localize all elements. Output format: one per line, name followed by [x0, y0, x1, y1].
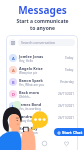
- staticText: Today: [65, 68, 74, 72]
- staticText: Okay thanks: [19, 119, 37, 123]
- staticText: See you soon: [19, 131, 38, 135]
- staticText: Search conversation: [21, 40, 56, 45]
- staticText: Hey, Hello: [19, 59, 34, 63]
- staticText: 26/11/2021: [58, 104, 74, 108]
- button[interactable]: B: [6, 76, 78, 88]
- button[interactable]: Favorites: [62, 139, 70, 147]
- staticText: Start a communicate to anyone: [16, 18, 69, 31]
- staticText: Jomlee Jonas: [19, 54, 44, 59]
- staticText: Kevin Ray: [19, 126, 38, 131]
- staticText: A: [12, 68, 15, 73]
- staticText: Yesterday: [60, 80, 74, 84]
- staticText: Yes, What are you: [19, 83, 44, 87]
- staticText: Wow,nice pic: [19, 71, 38, 75]
- button[interactable]: Search conversation: [18, 39, 75, 46]
- staticText: 26/11/2021: [58, 92, 74, 96]
- staticText: Messages: [18, 3, 67, 17]
- button[interactable]: D: [6, 88, 78, 100]
- button[interactable]: Menu: [9, 39, 16, 46]
- staticText: Sandra Mill: [19, 114, 41, 119]
- staticText: Today: [65, 56, 74, 60]
- button[interactable]: S: [6, 112, 78, 124]
- staticText: 26/11/2021: [58, 128, 74, 132]
- staticText: K: [12, 128, 15, 133]
- button[interactable]: J: [6, 100, 78, 112]
- button[interactable]: A: [6, 64, 78, 76]
- staticText: Ohhhh...: [19, 95, 32, 99]
- button[interactable]: A: [6, 52, 78, 64]
- staticText: Yes, its working: [19, 107, 41, 111]
- staticText: James Bond: [19, 102, 42, 107]
- staticText: A: [12, 56, 15, 61]
- staticText: Angelo Krise: [19, 66, 43, 71]
- staticText: D: [12, 92, 15, 97]
- staticText: Start Chat: [62, 130, 83, 135]
- staticText: 26/11/2021: [58, 116, 74, 120]
- staticText: J: [12, 104, 14, 109]
- staticText: Back mora: [19, 90, 40, 95]
- button[interactable]: Start Chat: [54, 128, 84, 136]
- staticText: B: [12, 80, 15, 85]
- button[interactable]: Emoji: [40, 139, 48, 147]
- button[interactable]: K: [6, 124, 78, 136]
- staticText: Banon Spark: [19, 78, 43, 83]
